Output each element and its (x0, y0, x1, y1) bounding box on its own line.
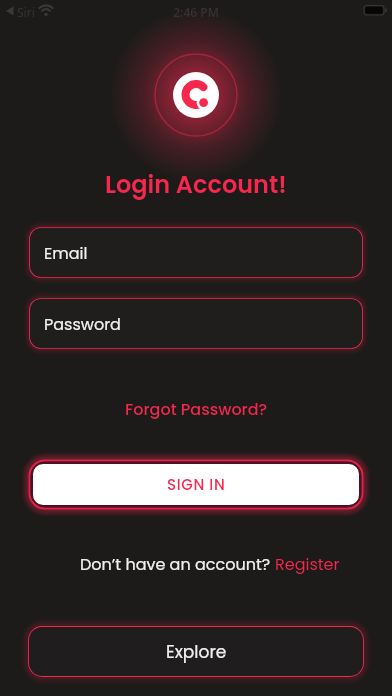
button[interactable]: Email (30, 228, 362, 277)
staticText: 2:46 PM (0, 4, 392, 20)
staticText: Login Account! (105, 168, 287, 202)
staticText: Password (44, 313, 121, 335)
staticText: Don’t have an account? (80, 553, 275, 575)
button[interactable]: SIGN IN (33, 464, 359, 505)
staticText: Explore (166, 640, 227, 664)
button[interactable]: Forgot Password? (125, 398, 268, 420)
staticText: SIGN IN (167, 474, 226, 495)
button[interactable]: Password (30, 299, 362, 348)
staticText: Siri (17, 4, 35, 20)
button[interactable]: Register (275, 553, 340, 575)
button[interactable]: Explore (29, 627, 363, 676)
staticText: Email (44, 242, 88, 264)
